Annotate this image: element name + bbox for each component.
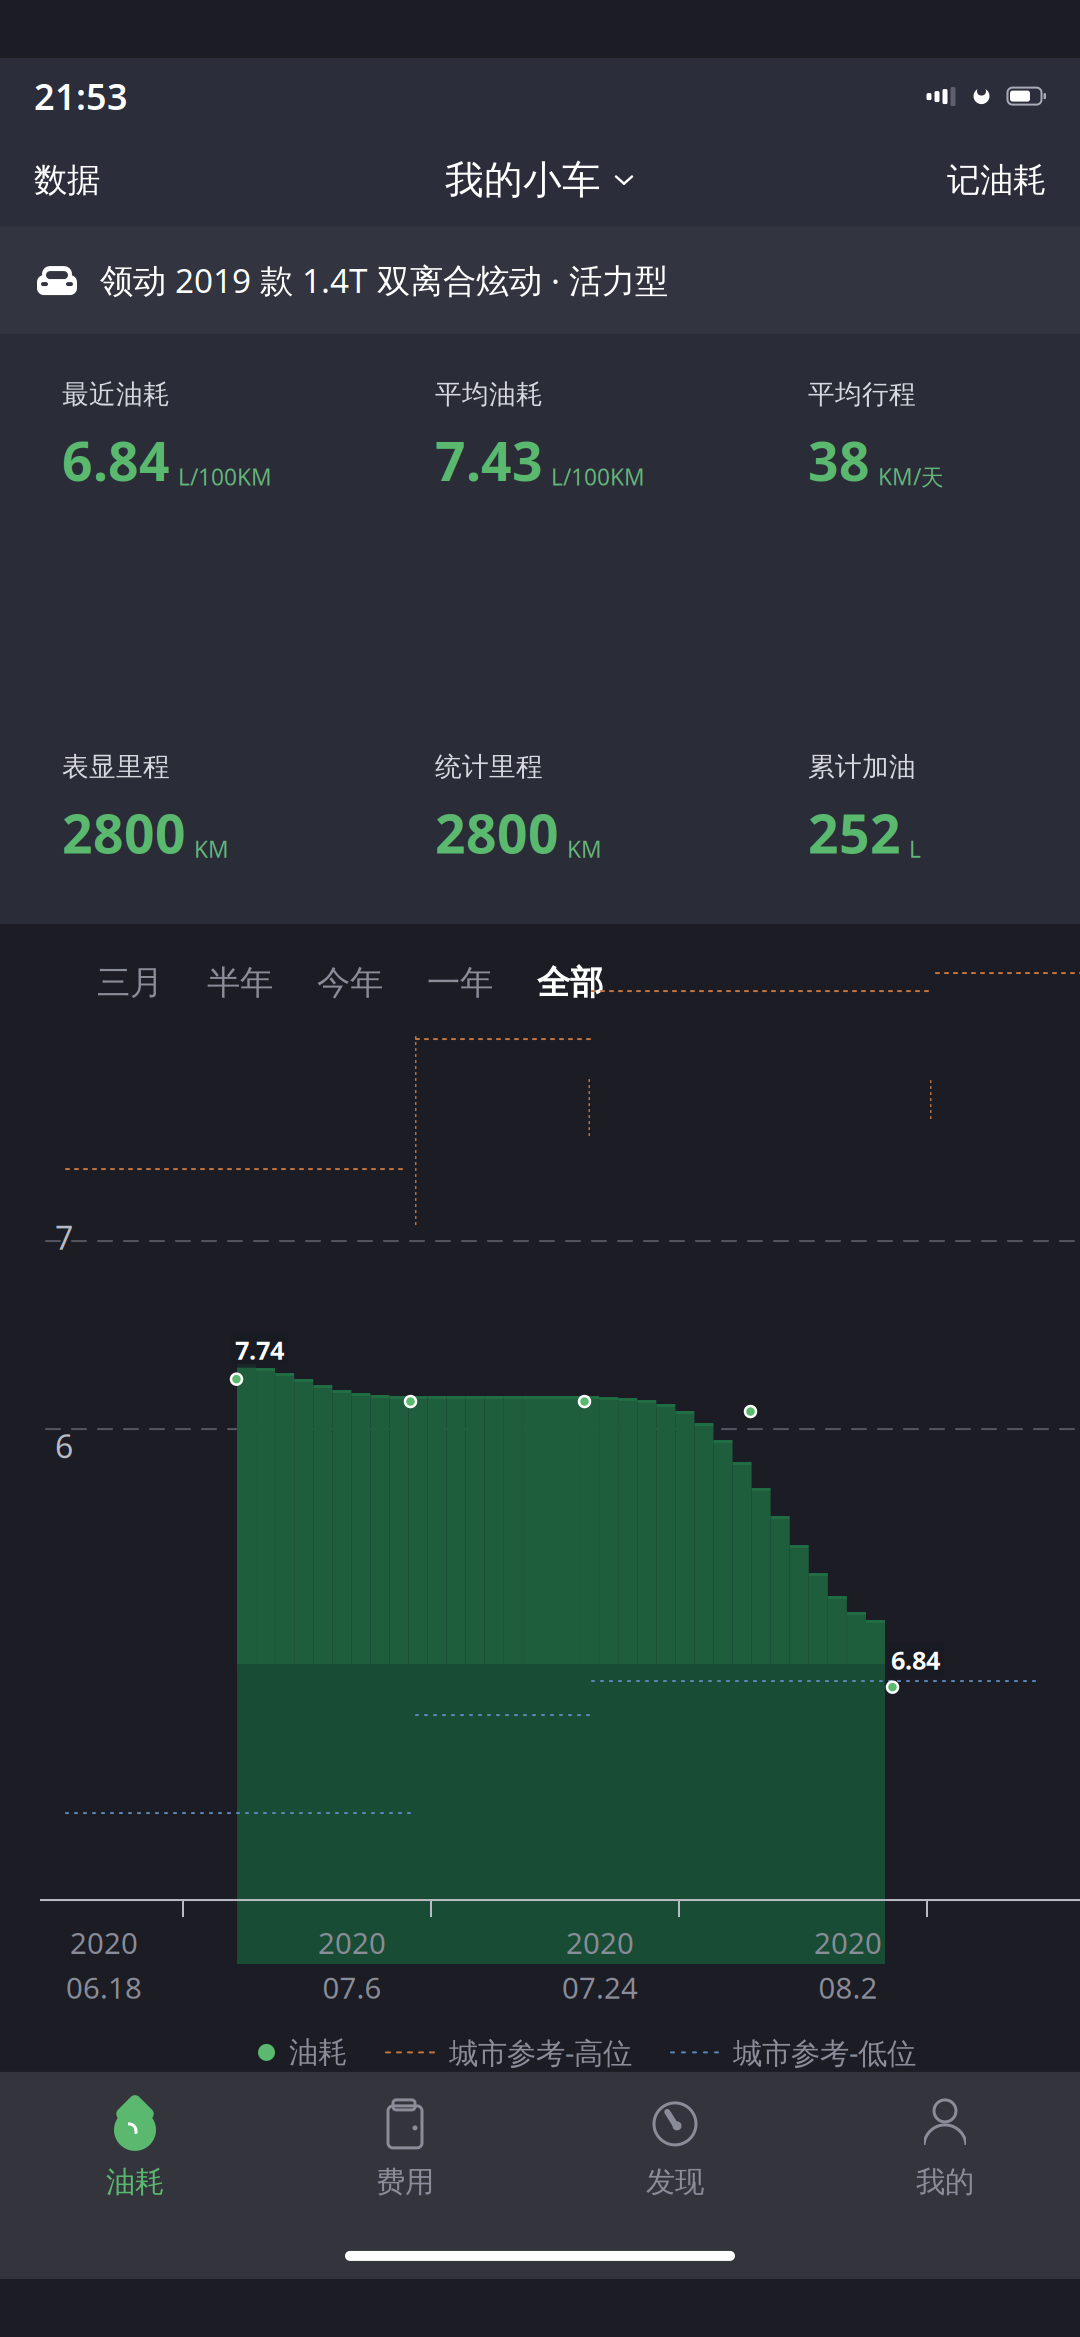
staticText: 费用 bbox=[376, 2164, 434, 2200]
staticText: 07.6 bbox=[322, 1968, 381, 2007]
staticText: 7.43 bbox=[435, 425, 543, 496]
button[interactable]: 今年 bbox=[295, 946, 405, 1019]
staticText: 08.2 bbox=[818, 1968, 877, 2007]
staticText: 记油耗 bbox=[947, 160, 1046, 200]
staticText: 2800 bbox=[62, 797, 186, 868]
staticText: 6.84 bbox=[891, 1643, 940, 1677]
button[interactable]: 发现 bbox=[540, 2090, 810, 2208]
staticText: KM/天 bbox=[878, 461, 944, 492]
button[interactable]: 数据 bbox=[6, 146, 128, 214]
staticText: KM bbox=[194, 834, 229, 864]
button[interactable]: 全部 bbox=[515, 946, 625, 1019]
staticText: 数据 bbox=[34, 160, 100, 200]
staticText: 2020 bbox=[70, 1923, 138, 1962]
staticText: 2020 bbox=[318, 1923, 386, 1962]
staticText: 2020 bbox=[566, 1923, 634, 1962]
button[interactable]: 油耗 bbox=[0, 2090, 270, 2208]
button[interactable]: 半年 bbox=[185, 946, 295, 1019]
staticText: 06.18 bbox=[66, 1968, 142, 2007]
staticText: 2020 bbox=[814, 1923, 882, 1962]
staticText: L/100KM bbox=[551, 462, 645, 492]
staticText: KM bbox=[567, 834, 602, 864]
staticText: 平均行程 bbox=[808, 378, 916, 411]
staticText: 平均油耗 bbox=[435, 378, 543, 411]
staticText: 半年 bbox=[207, 962, 273, 1003]
staticText: 城市参考-高位 bbox=[449, 2033, 632, 2072]
staticText: 252 bbox=[808, 797, 901, 868]
button[interactable]: 三月 bbox=[75, 946, 185, 1019]
staticText: 表显里程 bbox=[62, 750, 170, 783]
staticText: 07.24 bbox=[562, 1968, 638, 2007]
staticText: 城市参考-低位 bbox=[733, 2033, 916, 2072]
staticText: 我的 bbox=[916, 2164, 974, 2200]
button[interactable]: 费用 bbox=[270, 2090, 540, 2208]
button[interactable]: 领动 2019 款 1.4T 双离合炫动 · 活力型 bbox=[0, 226, 1080, 334]
staticText: 发现 bbox=[646, 2164, 704, 2200]
staticText: L/100KM bbox=[178, 462, 272, 492]
staticText: 7.74 bbox=[235, 1333, 284, 1367]
staticText: 全部 bbox=[537, 962, 603, 1003]
staticText: 累计加油 bbox=[808, 750, 916, 783]
staticText: 领动 2019 款 1.4T 双离合炫动 · 活力型 bbox=[100, 258, 668, 302]
staticText: 6 bbox=[55, 1424, 73, 1467]
staticText: 今年 bbox=[317, 962, 383, 1003]
button[interactable]: 我的小车 bbox=[429, 144, 651, 216]
staticText: 38 bbox=[808, 425, 870, 496]
staticText: L bbox=[909, 834, 921, 864]
staticText: 我的小车 bbox=[445, 156, 601, 204]
staticText: 一年 bbox=[427, 962, 493, 1003]
button[interactable]: 我的 bbox=[810, 2090, 1080, 2208]
button[interactable]: 记油耗 bbox=[919, 146, 1074, 214]
staticText: 2800 bbox=[435, 797, 559, 868]
staticText: 7 bbox=[55, 1216, 73, 1258]
staticText: 三月 bbox=[97, 962, 163, 1003]
staticText: 21:53 bbox=[34, 72, 128, 120]
staticText: 统计里程 bbox=[435, 750, 543, 783]
staticText: 油耗 bbox=[289, 2034, 347, 2070]
staticText: 6.84 bbox=[62, 425, 170, 496]
button[interactable]: 一年 bbox=[405, 946, 515, 1019]
staticText: 油耗 bbox=[106, 2164, 164, 2200]
staticText: 最近油耗 bbox=[62, 378, 170, 411]
